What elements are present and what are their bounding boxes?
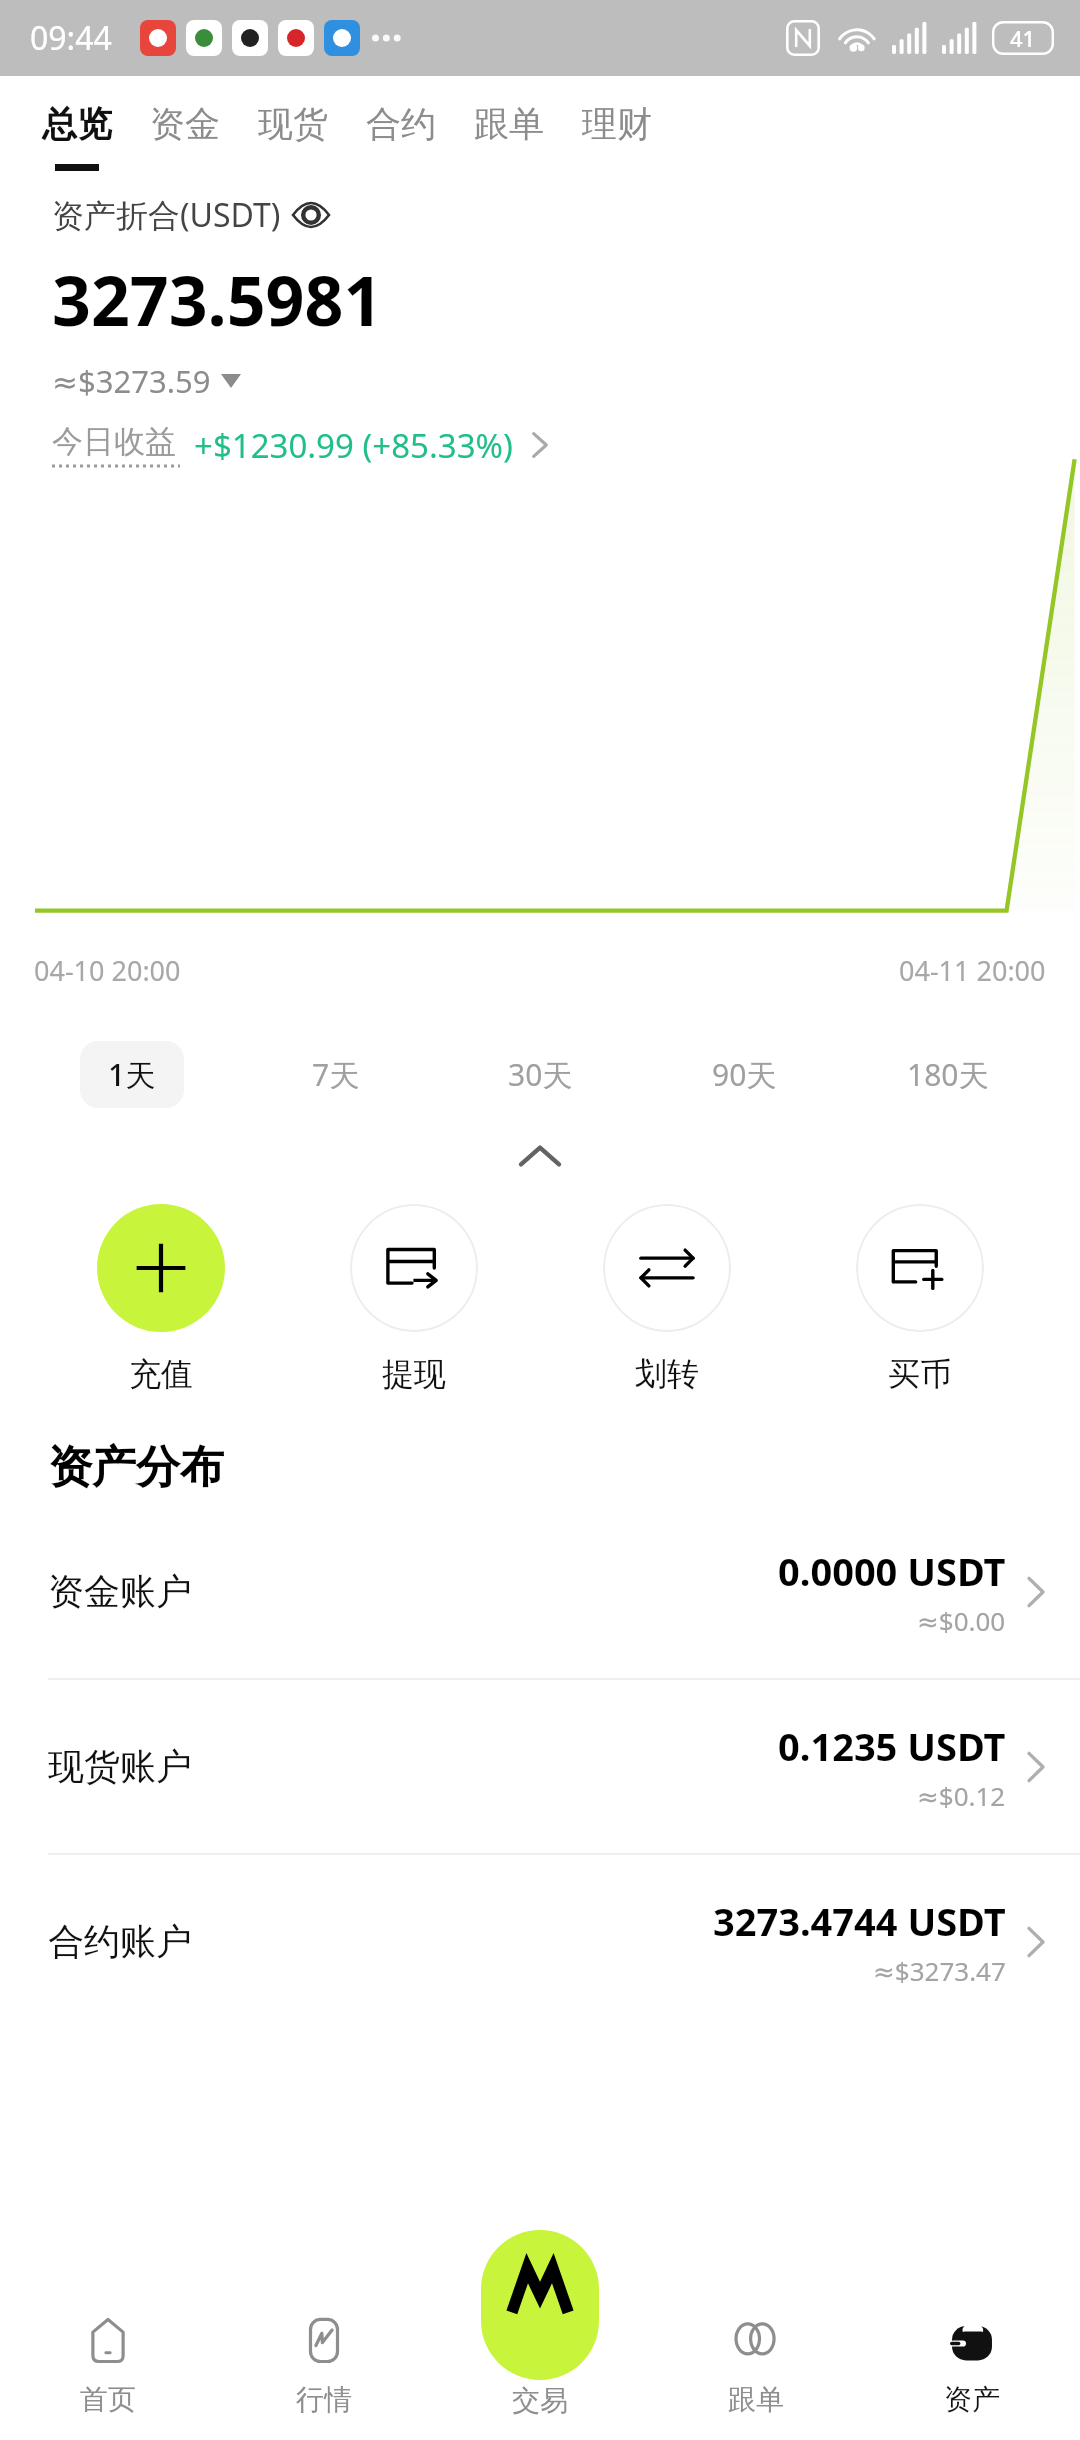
staticText: 1天 [108,1054,156,1095]
button[interactable]: 提现 [287,1204,540,1394]
staticText: 资金账户 [48,1569,192,1614]
staticText: ≈$0.00 [917,1603,1006,1638]
staticText: 09:44 [30,16,112,60]
staticText: 资产分布 [48,1440,224,1495]
button[interactable]: 现货 [258,102,366,171]
staticText: 提现 [382,1354,446,1394]
staticText: 0.0000 USDT [778,1545,1006,1597]
staticText: 7天 [312,1054,360,1095]
staticText: 划转 [635,1354,699,1394]
staticText: ≈$0.12 [917,1778,1006,1813]
button[interactable]: 90天 [642,1041,846,1108]
button[interactable]: 理财 [582,102,652,171]
staticText: 资金 [150,102,220,146]
staticText: 充值 [129,1354,193,1394]
staticText: 90天 [712,1054,777,1095]
other: 隐藏资产 [293,202,329,228]
staticText: ≈$3273.59 [52,360,211,402]
staticText: 理财 [582,102,652,146]
staticText: 180天 [907,1054,989,1095]
button[interactable]: 跟单 [648,2290,864,2440]
staticText: 跟单 [474,102,544,146]
button[interactable]: 首页 [0,2290,216,2440]
button[interactable]: 现货账户 [0,1680,1080,1853]
staticText: 首页 [80,2382,136,2417]
staticText: 现货账户 [48,1744,192,1789]
button[interactable]: 总览 [42,102,150,171]
button[interactable]: 7天 [234,1041,438,1108]
staticText: ≈$3273.47 [873,1953,1006,1988]
button[interactable]: 资产折合(USDT) [52,193,329,237]
button[interactable]: 资产 [864,2290,1080,2440]
staticText: 30天 [508,1054,573,1095]
button[interactable]: 交易 [481,2230,599,2380]
button[interactable]: 合约账户 [0,1855,1080,2028]
button[interactable]: 行情 [216,2290,432,2440]
button[interactable]: 跟单 [474,102,582,171]
staticText: 资产折合(USDT) [52,193,281,237]
button[interactable]: ≈$3273.59 [52,360,241,402]
staticText: 买币 [888,1354,952,1394]
staticText: 3273.5981 [52,253,383,346]
button[interactable]: 今日收益 [52,422,549,468]
staticText: +$1230.99 (+85.33%) [194,423,513,468]
button[interactable]: 1天 [30,1041,234,1108]
staticText: 现货 [258,102,328,146]
staticText: 今日收益 [52,422,176,461]
staticText: 行情 [296,2382,352,2417]
button[interactable]: 交易 [432,2290,648,2440]
staticText: 合约账户 [48,1919,192,1964]
button[interactable]: 资金 [150,102,258,171]
button[interactable]: 划转 [540,1204,793,1394]
button[interactable]: 资金账户 [0,1505,1080,1678]
button[interactable]: 180天 [846,1041,1050,1108]
button[interactable]: 合约 [366,102,474,171]
staticText: 04-10 20:00 [34,952,181,989]
staticText: 合约 [366,102,436,146]
button[interactable]: 充值 [34,1204,287,1394]
staticText: 跟单 [728,2382,784,2417]
staticText: 0.1235 USDT [778,1720,1006,1772]
staticText: 3273.4744 USDT [713,1895,1006,1947]
staticText: 总览 [42,102,112,146]
button[interactable]: 收起 [505,1121,575,1191]
staticText: 41 [1010,23,1036,53]
staticText: 资产 [944,2382,1000,2417]
button[interactable]: 30天 [438,1041,642,1108]
staticText: 交易 [512,2383,568,2418]
staticText: 04-11 20:00 [899,952,1046,989]
button[interactable]: 买币 [793,1204,1046,1394]
